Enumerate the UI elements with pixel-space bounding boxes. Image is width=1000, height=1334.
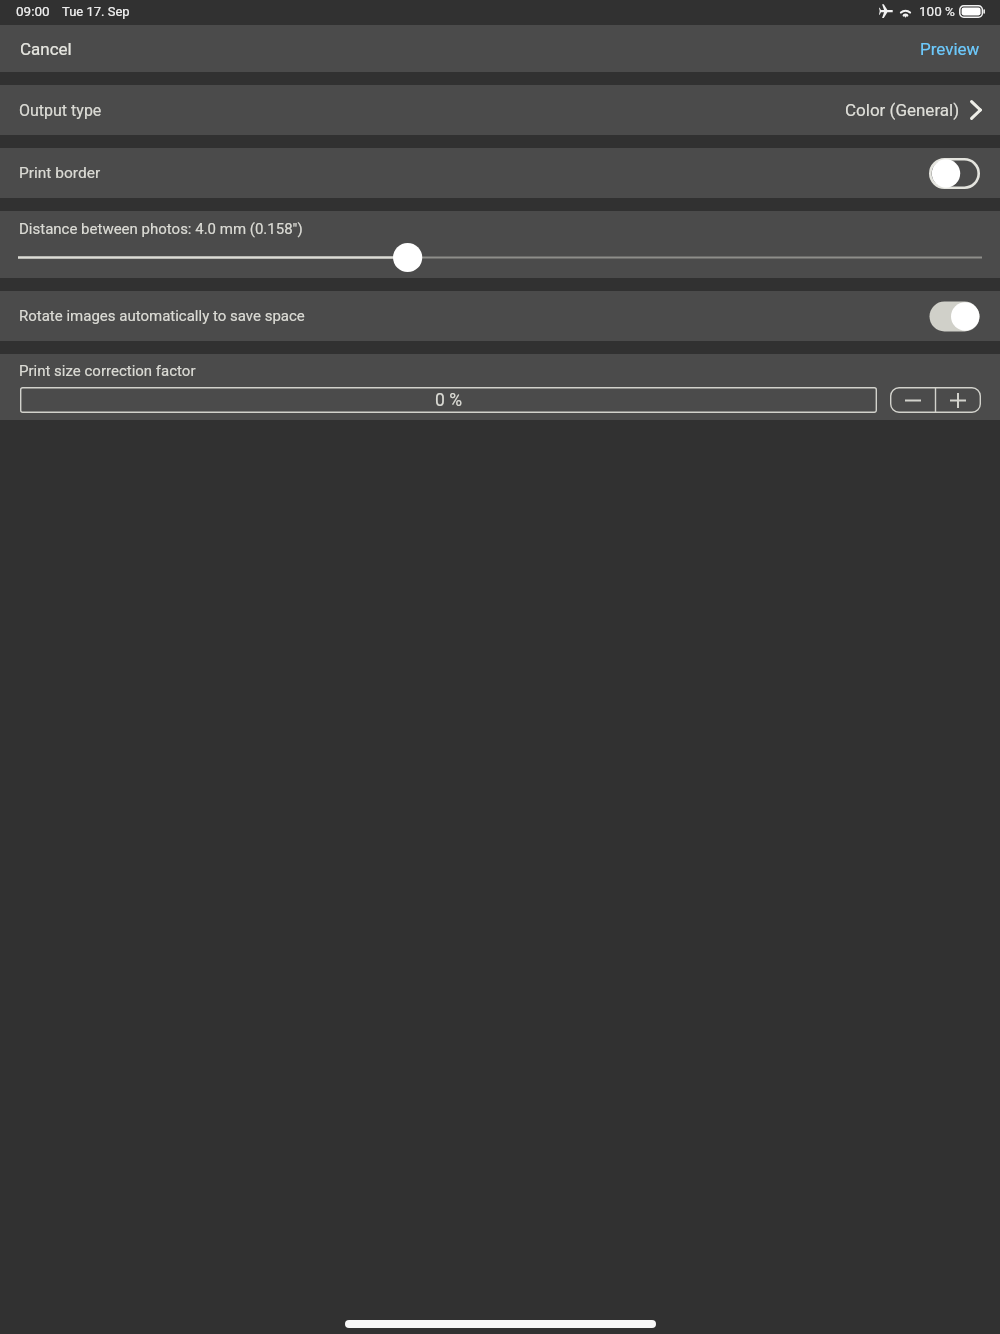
staticText: Tue 17. Sep [62,4,130,19]
staticText: Print border [19,164,101,182]
staticText: Cancel [20,39,72,59]
button[interactable]: Cancel [0,25,92,72]
staticText: Preview [920,39,980,59]
staticText: Distance between photos: 4.0 mm (0.158") [19,220,303,238]
staticText: Print size correction factor [19,362,196,380]
button[interactable]: Distance between photos slider [0,242,1000,274]
staticText: Output type [19,101,102,120]
button[interactable]: Print border, off [929,158,980,189]
staticText: 0 % [435,390,462,411]
button[interactable]: Print border [0,148,1000,198]
button[interactable]: Output type [0,85,1000,135]
staticText: Rotate images automatically to save spac… [19,307,305,325]
staticText: 09:00 [16,3,50,19]
button[interactable]: Rotate images automatically, on [929,301,980,332]
staticText: 100 % [919,3,955,19]
button[interactable]: Increase correction factor [935,387,981,413]
button[interactable]: Preview [900,25,1000,72]
button[interactable]: Decrease correction factor [890,387,935,413]
staticText: Color (General) [845,100,960,120]
button[interactable]: Rotate images automatically to save spac… [0,291,1000,341]
button[interactable]: 0 % [20,387,877,413]
